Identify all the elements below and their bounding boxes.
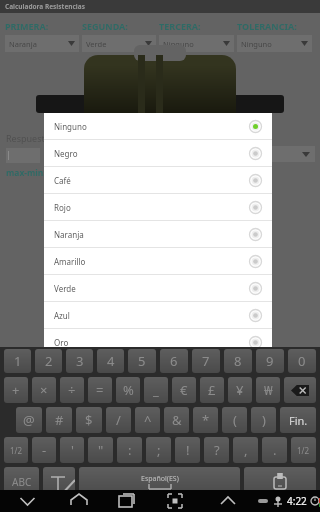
staticText: 1 bbox=[14, 352, 22, 370]
button[interactable]: Amarillo bbox=[44, 248, 272, 274]
button[interactable]: Negro bbox=[44, 140, 272, 166]
staticText: Calculadora Resistencias bbox=[5, 2, 85, 11]
button[interactable]: & bbox=[164, 407, 189, 433]
button[interactable]: ) bbox=[251, 407, 276, 433]
staticText: ÷ bbox=[68, 381, 76, 399]
button[interactable]: ' bbox=[60, 437, 84, 463]
button[interactable]: " bbox=[88, 437, 113, 463]
button[interactable]: Oro bbox=[44, 329, 272, 355]
button[interactable]: Ninguno bbox=[44, 113, 272, 139]
button[interactable]: ? bbox=[204, 437, 229, 463]
staticText: Español(ES) bbox=[141, 474, 179, 484]
button[interactable]: / bbox=[106, 407, 131, 433]
button[interactable]: ₩ bbox=[256, 377, 280, 403]
button[interactable]: Hide keyboard bbox=[0, 490, 55, 512]
button[interactable]: , bbox=[233, 437, 258, 463]
button[interactable]: € bbox=[172, 377, 196, 403]
button[interactable]: Recent apps bbox=[103, 490, 151, 512]
staticText: , bbox=[244, 441, 248, 459]
staticText: Ninguno bbox=[163, 39, 223, 49]
staticText: - bbox=[42, 441, 47, 459]
staticText: Negro bbox=[54, 148, 249, 159]
button[interactable]: ! bbox=[175, 437, 200, 463]
staticText: Gris bbox=[54, 360, 249, 371]
button[interactable]: % bbox=[116, 377, 140, 403]
button[interactable]: Gris bbox=[44, 356, 272, 375]
button[interactable]: Fin. bbox=[280, 407, 316, 433]
staticText: ) bbox=[262, 411, 266, 429]
staticText: 4 bbox=[107, 352, 115, 370]
button[interactable]: 9 bbox=[256, 349, 284, 373]
staticText: PRIMERA: bbox=[5, 20, 49, 32]
staticText: & bbox=[172, 411, 182, 429]
button[interactable]: . bbox=[262, 437, 287, 463]
staticText: € bbox=[180, 381, 188, 399]
button[interactable]: 6 bbox=[160, 349, 188, 373]
staticText: * bbox=[202, 411, 210, 429]
other: Clipboard bbox=[244, 467, 316, 496]
button[interactable]: Home bbox=[55, 490, 103, 512]
button[interactable]: - bbox=[32, 437, 56, 463]
staticText: SEGUNDA: bbox=[82, 20, 128, 32]
staticText: 5 bbox=[138, 352, 146, 370]
button[interactable]: 3 bbox=[66, 349, 93, 373]
staticText: ; bbox=[157, 441, 161, 459]
staticText: . bbox=[273, 441, 277, 459]
button[interactable]: 0 bbox=[288, 349, 316, 373]
button[interactable]: Screenshot bbox=[151, 490, 199, 512]
button[interactable]: 1/2 bbox=[4, 437, 28, 463]
staticText: 9 bbox=[266, 352, 274, 370]
button[interactable]: 1/2 bbox=[291, 437, 316, 463]
button[interactable]: ^ bbox=[135, 407, 160, 433]
button[interactable]: 5 bbox=[128, 349, 156, 373]
button[interactable]: ABC bbox=[4, 467, 39, 496]
staticText: ' bbox=[71, 441, 74, 459]
button[interactable]: Café bbox=[44, 167, 272, 193]
button[interactable]: Español(ES) bbox=[79, 467, 240, 496]
staticText: ( bbox=[233, 411, 237, 429]
button[interactable]: = bbox=[88, 377, 112, 403]
button[interactable]: Azul bbox=[44, 302, 272, 328]
button[interactable]: 8 bbox=[224, 349, 252, 373]
staticText: max-min: bbox=[6, 167, 46, 179]
staticText: Verde bbox=[54, 283, 249, 294]
button[interactable]: ( bbox=[222, 407, 247, 433]
button[interactable]: Naranja bbox=[44, 221, 272, 247]
staticText: Naranja bbox=[54, 229, 249, 240]
staticText: Naranja bbox=[9, 39, 68, 49]
button[interactable]: _ bbox=[144, 377, 168, 403]
button[interactable]: Ninguno bbox=[237, 35, 312, 52]
button[interactable]: @ bbox=[16, 407, 42, 433]
button[interactable]: ÷ bbox=[60, 377, 84, 403]
button[interactable]: Rojo bbox=[44, 194, 272, 220]
button[interactable]: Ninguno bbox=[159, 35, 234, 52]
button[interactable]: $ bbox=[76, 407, 102, 433]
staticText: Respuesta: bbox=[6, 132, 53, 144]
staticText: 6 bbox=[170, 352, 178, 370]
button[interactable]: × bbox=[32, 377, 56, 403]
button[interactable]: £ bbox=[200, 377, 224, 403]
staticText: Oro bbox=[54, 337, 249, 348]
button[interactable]: ¥ bbox=[228, 377, 252, 403]
button[interactable]: 7 bbox=[192, 349, 220, 373]
button[interactable]: * bbox=[193, 407, 218, 433]
other: Handwriting bbox=[43, 467, 75, 496]
button[interactable]: 2 bbox=[35, 349, 62, 373]
button[interactable]: Verde bbox=[44, 275, 272, 301]
staticText: Amarillo bbox=[54, 256, 249, 267]
button[interactable]: 1 bbox=[4, 349, 31, 373]
button[interactable]: : bbox=[117, 437, 142, 463]
button[interactable]: 4 bbox=[97, 349, 124, 373]
staticText: 8 bbox=[234, 352, 242, 370]
staticText: × bbox=[40, 381, 48, 399]
button[interactable]: ; bbox=[146, 437, 171, 463]
button[interactable]: More bbox=[199, 490, 257, 512]
staticText: ₩ bbox=[264, 381, 273, 399]
button[interactable]: Verde bbox=[82, 35, 156, 52]
staticText: + bbox=[12, 381, 20, 399]
button[interactable]: Naranja bbox=[5, 35, 79, 52]
button[interactable]: # bbox=[46, 407, 72, 433]
button[interactable]: + bbox=[4, 377, 28, 403]
staticText: / bbox=[116, 411, 121, 429]
staticText: @ bbox=[23, 411, 35, 429]
